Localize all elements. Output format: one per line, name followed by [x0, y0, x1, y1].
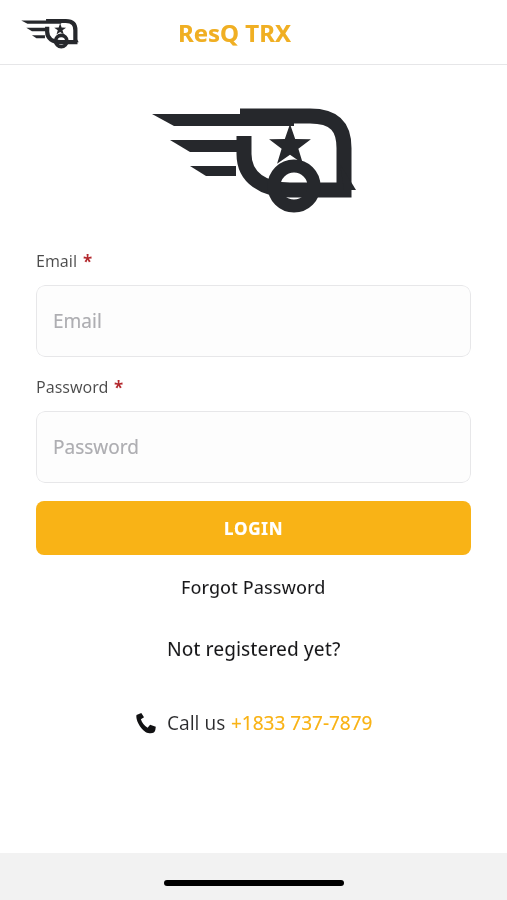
button[interactable]: Not registered yet? — [151, 630, 357, 668]
staticText: * — [83, 250, 93, 273]
staticText: Call us — [167, 710, 231, 736]
staticText: Forgot Password — [181, 575, 326, 600]
staticText: Password — [53, 434, 139, 460]
button[interactable]: LOGIN — [36, 501, 471, 555]
staticText: Email — [36, 250, 78, 272]
staticText: +1833 737-7879 — [231, 710, 373, 736]
button[interactable]: Forgot Password — [165, 569, 342, 606]
button[interactable]: ResQ TRX logo — [14, 13, 86, 53]
staticText: Email — [53, 308, 102, 334]
staticText: * — [114, 376, 124, 399]
staticText: Password — [36, 376, 109, 398]
button[interactable]: Password — [36, 411, 471, 483]
button[interactable]: Email — [36, 285, 471, 357]
staticText: ResQ TRX — [178, 16, 292, 49]
button[interactable]: Call — [125, 704, 383, 742]
staticText: Not registered yet? — [167, 636, 341, 662]
staticText: LOGIN — [224, 517, 284, 540]
other: Call — [135, 713, 156, 734]
